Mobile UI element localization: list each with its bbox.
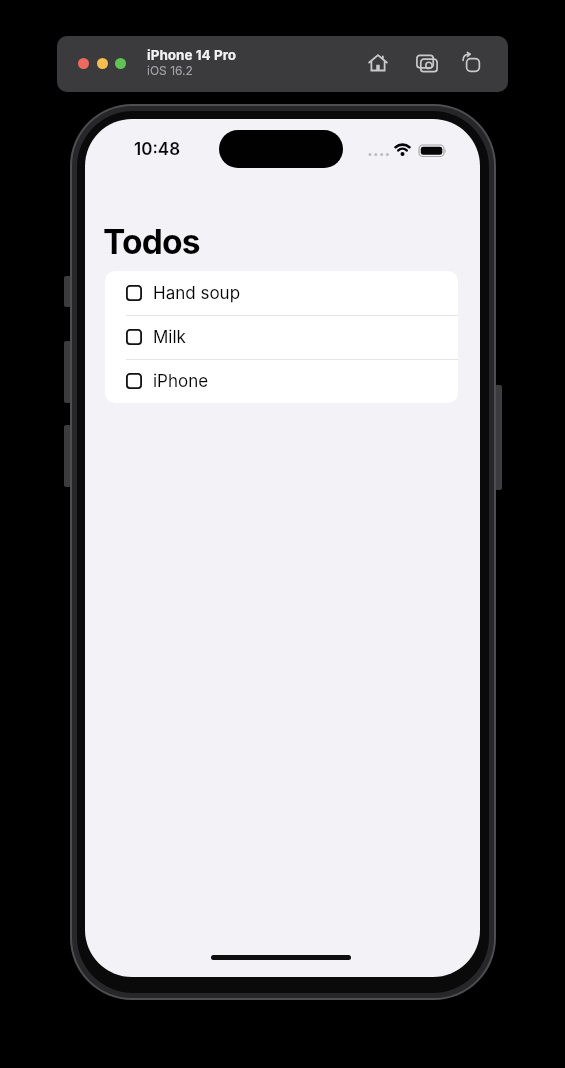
button[interactable]: iPhone (105, 359, 458, 403)
button[interactable] (78, 58, 89, 69)
staticText: iOS 16.2 (147, 63, 193, 78)
staticText: Hand soup (153, 283, 241, 304)
button[interactable] (456, 48, 486, 78)
staticText: Milk (153, 327, 186, 348)
staticText: 10:48 (134, 139, 181, 160)
button[interactable]: Hand soup (105, 271, 458, 315)
staticText: Todos (103, 222, 200, 263)
button[interactable]: Milk (105, 315, 458, 359)
button[interactable] (115, 58, 126, 69)
button[interactable] (412, 48, 442, 78)
staticText: iPhone 14 Pro (147, 47, 237, 63)
button[interactable] (363, 48, 393, 78)
staticText: iPhone (153, 371, 209, 392)
button[interactable] (97, 58, 108, 69)
